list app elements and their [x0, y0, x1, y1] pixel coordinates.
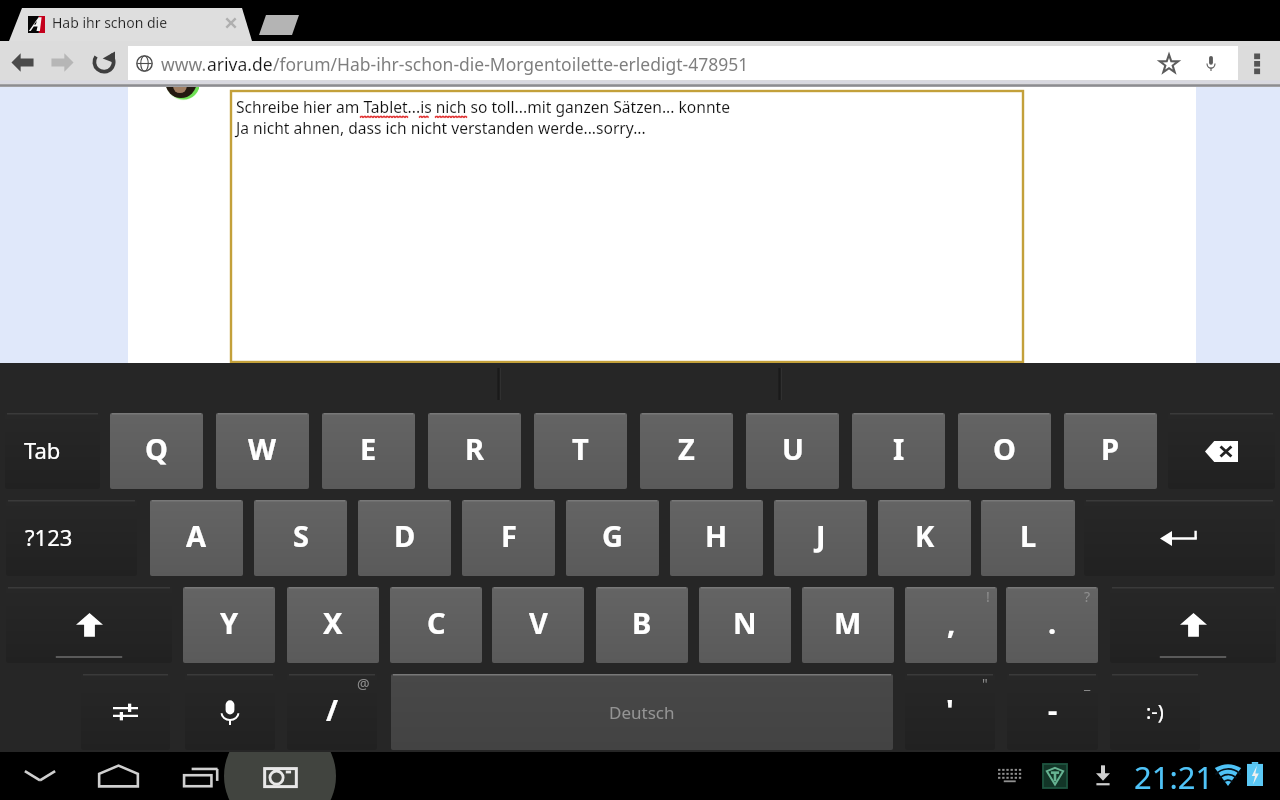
staticText: ': [946, 690, 954, 729]
staticText: W: [248, 429, 277, 468]
staticText: ?: [1084, 587, 1091, 606]
staticText: _: [1084, 674, 1091, 693]
button[interactable]: A: [150, 500, 243, 576]
button[interactable]: E: [322, 413, 415, 489]
button[interactable]: [81, 674, 170, 750]
button[interactable]: Tab: [5, 413, 100, 489]
button[interactable]: T: [534, 413, 627, 489]
button[interactable]: Q: [110, 413, 203, 489]
button[interactable]: Y: [183, 587, 275, 663]
staticText: B: [632, 603, 652, 642]
staticText: Ja nicht ahnen, dass ich nicht verstande…: [236, 117, 646, 138]
button[interactable]: B: [596, 587, 688, 663]
button[interactable]: V: [492, 587, 584, 663]
button[interactable]: C: [390, 587, 482, 663]
button[interactable]: L: [981, 500, 1075, 576]
button[interactable]: Z: [640, 413, 733, 489]
staticText: /: [326, 690, 339, 729]
staticText: G: [602, 516, 623, 555]
staticText: N: [733, 603, 757, 642]
staticText: R: [465, 429, 485, 468]
staticText: H: [705, 516, 728, 555]
staticText: E: [360, 429, 377, 468]
button[interactable]: H: [670, 500, 763, 576]
button[interactable]: F: [462, 500, 555, 576]
staticText: 21:21: [1134, 756, 1214, 798]
button[interactable]: R: [428, 413, 521, 489]
button[interactable]: Back: [4, 44, 40, 80]
staticText: M: [834, 603, 862, 642]
button[interactable]: :-): [1110, 674, 1200, 750]
button[interactable]: ,: [905, 587, 997, 663]
button[interactable]: Voice search: [1196, 48, 1226, 78]
staticText: S: [293, 516, 309, 555]
staticText: I: [893, 429, 905, 468]
staticText: A: [186, 516, 207, 555]
button[interactable]: [6, 587, 172, 663]
staticText: Tab: [24, 435, 61, 465]
button[interactable]: S: [254, 500, 347, 576]
button[interactable]: U: [746, 413, 839, 489]
staticText: !: [986, 587, 990, 606]
staticText: ariva.de: [207, 52, 273, 76]
button[interactable]: [28, 16, 45, 33]
button[interactable]: -: [1007, 674, 1098, 750]
staticText: ,: [947, 603, 956, 642]
button[interactable]: Recent apps: [183, 768, 219, 787]
button[interactable]: Keyboard: [997, 766, 1023, 784]
button[interactable]: G: [566, 500, 659, 576]
button[interactable]: .: [1006, 587, 1098, 663]
button[interactable]: Security: [1043, 764, 1067, 788]
button[interactable]: More options: [1246, 51, 1268, 76]
staticText: C: [427, 603, 446, 642]
button[interactable]: [1084, 500, 1275, 576]
button[interactable]: Downloads: [1092, 764, 1114, 786]
button[interactable]: [185, 674, 275, 750]
button[interactable]: Home: [97, 765, 140, 787]
staticText: V: [529, 603, 548, 642]
button[interactable]: ?123: [6, 500, 137, 576]
button[interactable]: Back: [22, 764, 58, 788]
button[interactable]: www.: [128, 46, 1238, 80]
button[interactable]: P: [1064, 413, 1157, 489]
button[interactable]: Bookmark: [1154, 48, 1184, 78]
button[interactable]: J: [774, 500, 867, 576]
staticText: X: [323, 603, 343, 642]
staticText: P: [1101, 429, 1120, 468]
button[interactable]: [1110, 587, 1276, 663]
staticText: K: [915, 516, 935, 555]
staticText: @: [357, 674, 370, 693]
button[interactable]: M: [802, 587, 894, 663]
staticText: Y: [220, 603, 239, 642]
staticText: ?123: [25, 522, 73, 552]
button[interactable]: [1168, 413, 1275, 489]
staticText: L: [1020, 516, 1037, 555]
button[interactable]: K: [878, 500, 971, 576]
staticText: T: [572, 429, 589, 468]
staticText: www.: [161, 52, 207, 76]
button[interactable]: O: [958, 413, 1051, 489]
staticText: J: [816, 516, 826, 555]
staticText: Hab ihr schon die: [52, 13, 168, 32]
button[interactable]: Forward: [44, 44, 80, 80]
button[interactable]: /: [287, 674, 377, 750]
button[interactable]: I: [852, 413, 945, 489]
staticText: -: [1048, 690, 1058, 729]
button[interactable]: ': [905, 674, 995, 750]
button[interactable]: W: [216, 413, 309, 489]
button[interactable]: Deutsch: [391, 674, 893, 750]
staticText: U: [782, 429, 804, 468]
staticText: O: [993, 429, 1016, 468]
button[interactable]: N: [699, 587, 791, 663]
staticText: .: [1048, 603, 1057, 642]
button[interactable]: D: [358, 500, 451, 576]
button[interactable]: Reload: [86, 44, 122, 80]
button[interactable]: X: [287, 587, 379, 663]
staticText: Z: [678, 429, 695, 468]
button[interactable]: Hab ihr schon die: [52, 13, 212, 35]
staticText: D: [394, 516, 416, 555]
button[interactable]: Screenshot: [264, 767, 297, 787]
staticText: /forum/Hab-ihr-schon-die-Morgentoilette-…: [273, 52, 749, 76]
button[interactable]: Close tab: [222, 14, 240, 32]
staticText: F: [501, 516, 517, 555]
